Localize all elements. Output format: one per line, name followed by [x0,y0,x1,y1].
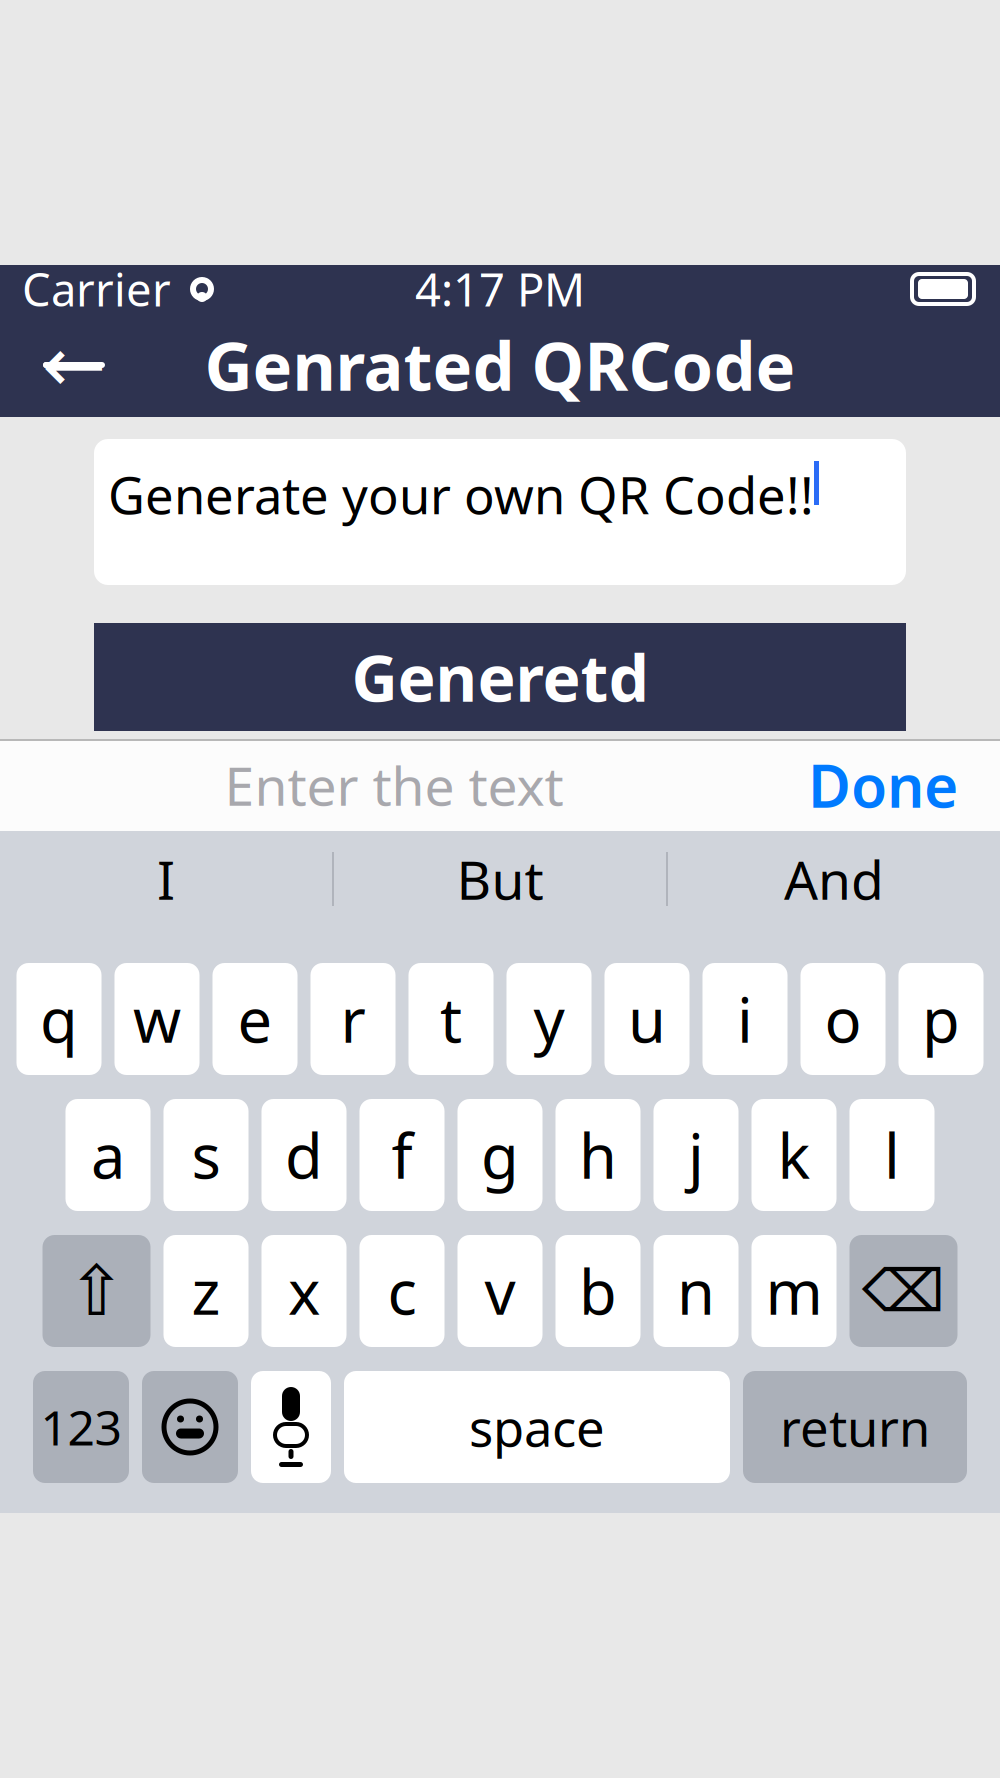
button[interactable]: h [555,1099,640,1211]
staticText: z [191,1250,220,1332]
staticText: p [922,978,960,1060]
button[interactable]: n [653,1235,738,1347]
staticText: 123 [40,1395,121,1459]
button[interactable]: Emoji [142,1371,238,1483]
staticText: Generetd [351,634,648,719]
staticText: l [884,1114,900,1196]
button[interactable]: c [359,1235,444,1347]
button[interactable]: s [163,1099,248,1211]
staticText: But [456,844,543,914]
button[interactable]: f [359,1099,444,1211]
button[interactable]: I [0,831,332,927]
staticText: s [191,1114,220,1196]
staticText: q [40,978,78,1060]
staticText: i [737,978,753,1060]
staticText: y [533,978,564,1060]
staticText: return [780,1393,930,1461]
button[interactable]: And [668,831,1000,927]
button[interactable]: y [506,963,591,1075]
staticText: ← [41,321,106,409]
staticText: Carrier [22,259,171,319]
button[interactable]: j [653,1099,738,1211]
staticText: x [288,1250,320,1332]
staticText: r [340,978,365,1060]
button[interactable]: x [261,1235,346,1347]
staticText: b [579,1250,617,1332]
button[interactable]: Dictation [251,1371,331,1483]
button[interactable]: space [344,1371,730,1483]
staticText: g [481,1114,519,1196]
button[interactable]: i [702,963,787,1075]
button[interactable]: u [604,963,689,1075]
staticText: o [824,978,861,1060]
staticText: f [391,1114,412,1196]
staticText: w [133,978,181,1060]
button[interactable]: return [743,1371,967,1483]
button[interactable]: Done [788,732,978,838]
staticText: t [440,978,462,1060]
button[interactable]: a [65,1099,150,1211]
staticText: Done [808,746,958,824]
staticText: v [484,1250,515,1332]
button[interactable]: k [751,1099,836,1211]
staticText: h [579,1114,617,1196]
button[interactable]: Delete [849,1235,957,1347]
staticText: 4:17 PM [415,259,585,319]
staticText: ⌫ [862,1258,945,1324]
staticText: c [387,1250,416,1332]
staticText: d [285,1114,323,1196]
staticText: And [784,844,884,914]
button[interactable]: l [849,1099,934,1211]
staticText: Genrated QRCode [204,321,795,409]
button[interactable]: q [16,963,101,1075]
button[interactable]: But [334,831,666,927]
staticText: a [91,1114,125,1196]
button[interactable]: Generate your own QR Code!! [94,439,906,585]
button[interactable]: p [898,963,983,1075]
staticText: u [628,978,666,1060]
staticText: e [237,978,272,1060]
button[interactable]: v [457,1235,542,1347]
button[interactable]: Generetd [94,623,906,731]
staticText: Enter the text [224,750,563,820]
button[interactable]: o [800,963,885,1075]
staticText: space [469,1393,605,1461]
button[interactable]: t [408,963,493,1075]
staticText: Generate your own QR Code!! [108,461,814,528]
button[interactable]: Shift [42,1235,150,1347]
button[interactable]: r [310,963,395,1075]
staticText: ⇧ [67,1252,125,1330]
button[interactable]: z [163,1235,248,1347]
staticText: m [765,1250,822,1332]
staticText: n [677,1250,715,1332]
staticText: k [777,1114,810,1196]
button[interactable]: b [555,1235,640,1347]
button[interactable]: w [114,963,199,1075]
button[interactable]: Back [26,325,122,405]
button[interactable]: g [457,1099,542,1211]
staticText: j [688,1114,704,1196]
button[interactable]: m [751,1235,836,1347]
button[interactable]: e [212,963,297,1075]
button[interactable]: d [261,1099,346,1211]
button[interactable]: 123 [33,1371,129,1483]
staticText: I [157,844,175,914]
